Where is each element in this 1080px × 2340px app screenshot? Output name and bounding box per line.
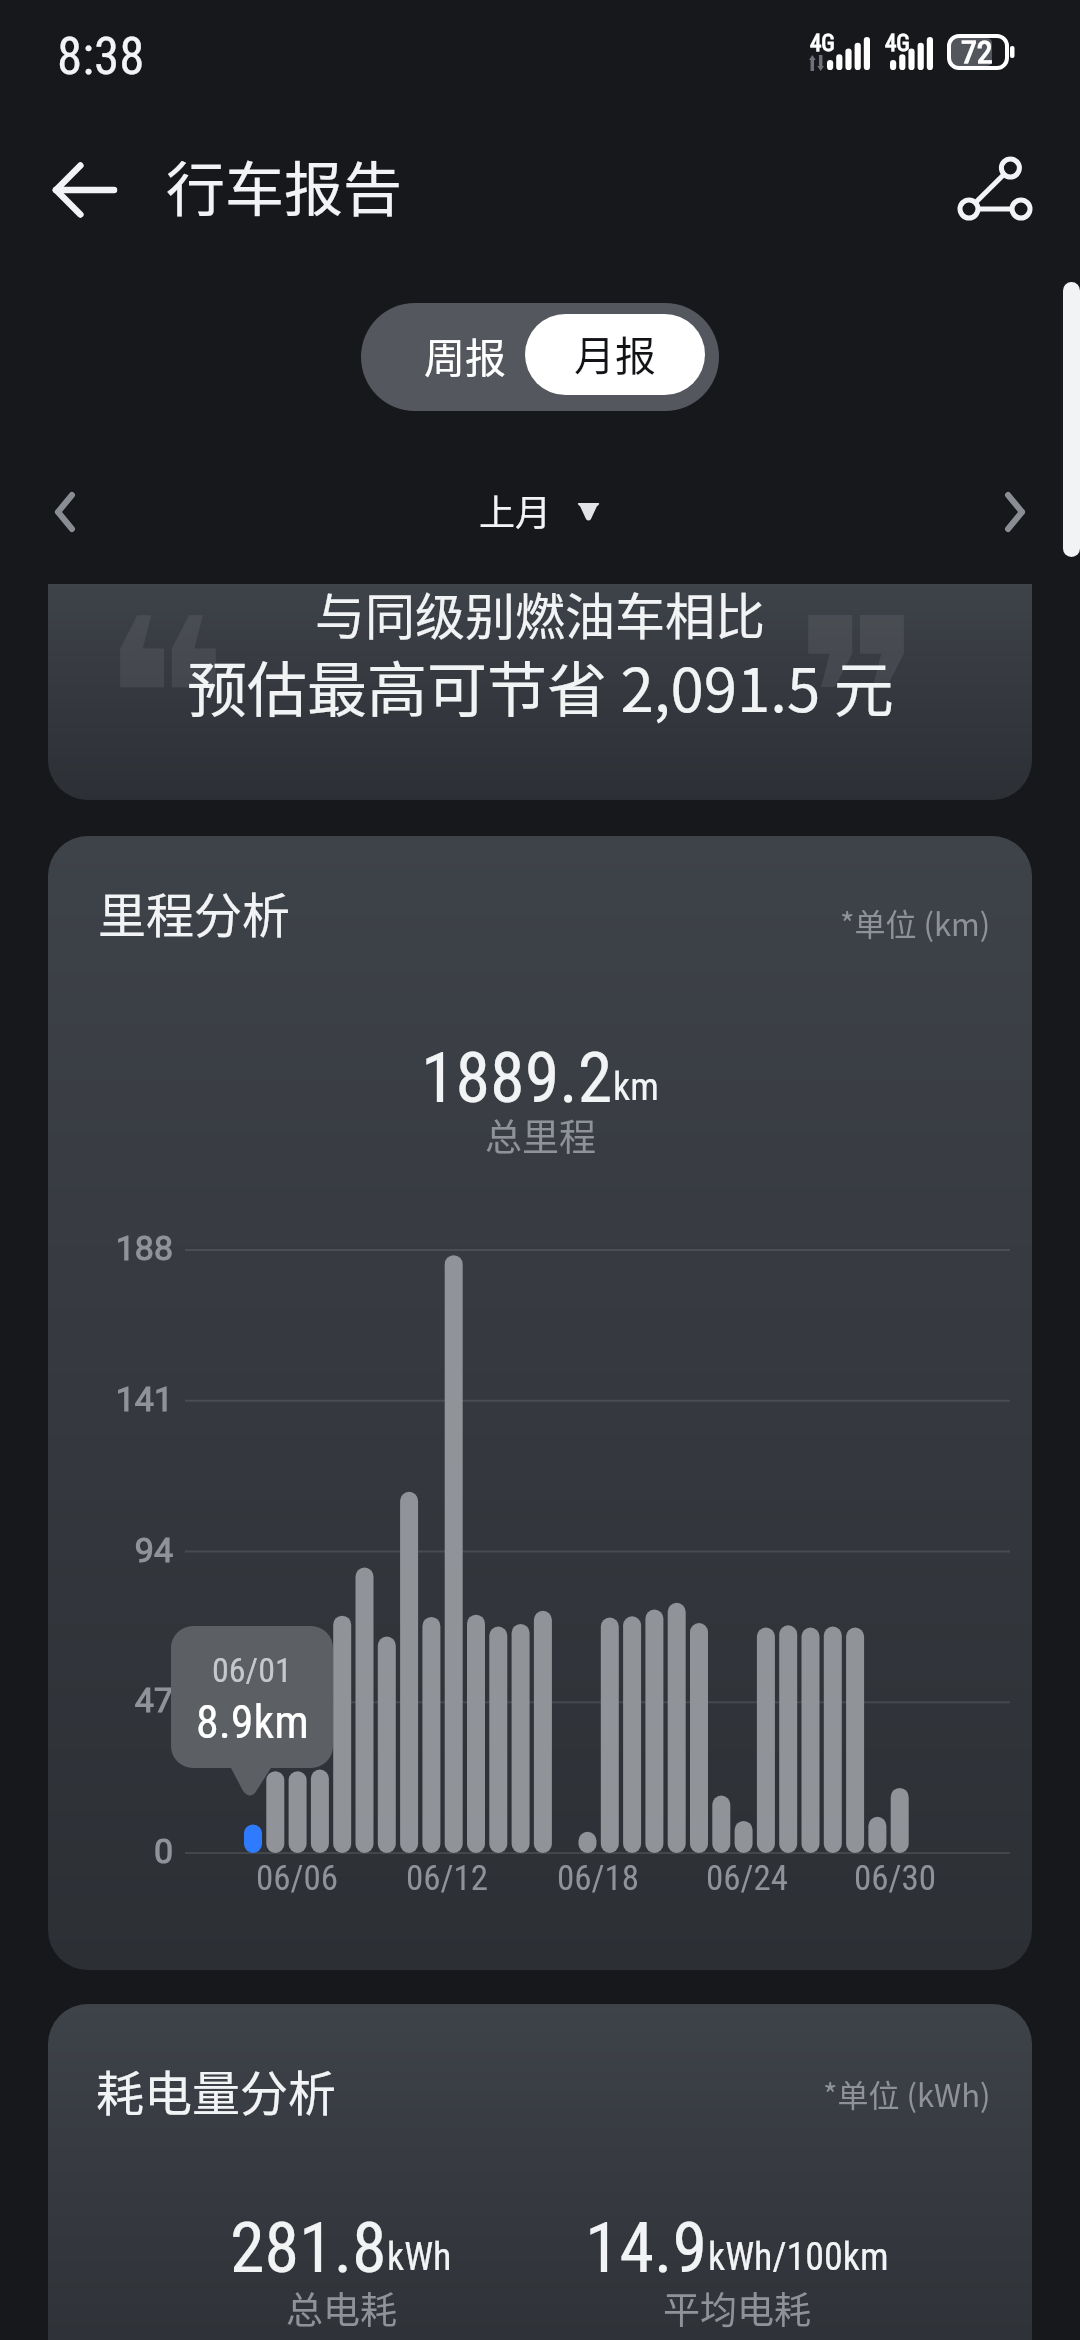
staticText: 06/30 (805, 1858, 985, 1899)
staticText: 里程分析 (98, 877, 291, 947)
staticText: 06/12 (357, 1858, 537, 1899)
staticText: 72 (961, 33, 993, 69)
button[interactable]: Share (944, 137, 1046, 239)
staticText: 4G (885, 30, 910, 57)
staticText: 周报 (424, 325, 506, 384)
staticText: 4G (810, 30, 835, 57)
staticText: 0 (51, 1831, 173, 1871)
staticText: *单位 (km) (840, 900, 991, 945)
staticText: 94 (51, 1530, 173, 1570)
staticText: 06/18 (508, 1858, 688, 1899)
button[interactable]: Back (36, 142, 132, 238)
staticText: 8.9km (196, 1695, 309, 1749)
button[interactable]: Previous month (23, 470, 107, 554)
staticText: 188 (51, 1228, 173, 1268)
staticText: *单位 (kWh) (823, 2071, 991, 2116)
staticText: 8:38 (57, 27, 145, 87)
button[interactable]: 上月 (479, 484, 601, 536)
staticText: 月报 (574, 323, 656, 382)
button[interactable]: 月报 (525, 314, 705, 395)
staticText: 14.9 (585, 2207, 708, 2289)
staticText: 281.8 (230, 2207, 387, 2289)
staticText: 47 (51, 1680, 173, 1720)
button[interactable]: 耗电量分析 (48, 2004, 1032, 2340)
staticText: ❞ (796, 584, 923, 788)
button[interactable]: 周报 (361, 303, 525, 411)
button[interactable]: 里程分析 (48, 836, 1032, 1970)
staticText: ❝ (102, 584, 229, 788)
staticText: km (613, 1065, 659, 1110)
staticText: 耗电量分析 (96, 2055, 337, 2125)
button[interactable]: ❝ (48, 584, 1032, 800)
button[interactable]: Next month (973, 470, 1057, 554)
staticText: 总里程 (485, 1108, 596, 1162)
staticText: 1889.2 (421, 1037, 613, 1119)
staticText: 预估最高可节省 2,091.5 元 (187, 642, 894, 729)
staticText: kWh (387, 2235, 452, 2280)
staticText: 与同级别燃油车相比 (315, 584, 765, 649)
staticText: kWh/100km (708, 2235, 889, 2280)
staticText: 141 (51, 1379, 173, 1419)
staticText: 行车报告 (166, 143, 403, 228)
staticText: 平均电耗 (663, 2281, 811, 2335)
staticText: 06/01 (212, 1650, 292, 1690)
staticText: 总电耗 (286, 2281, 397, 2335)
staticText: 06/06 (207, 1858, 387, 1899)
staticText: 06/24 (657, 1858, 837, 1899)
staticText: 上月 (479, 484, 552, 536)
